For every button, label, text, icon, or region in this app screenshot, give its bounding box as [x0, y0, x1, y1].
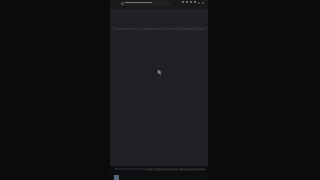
staticText: "Unexpected Error: Display Browser Does …	[112, 27, 208, 31]
button[interactable]: Address bar	[120, 1, 171, 6]
staticText: Hello 2024 Site Terms Advanced Home	[146, 168, 204, 172]
